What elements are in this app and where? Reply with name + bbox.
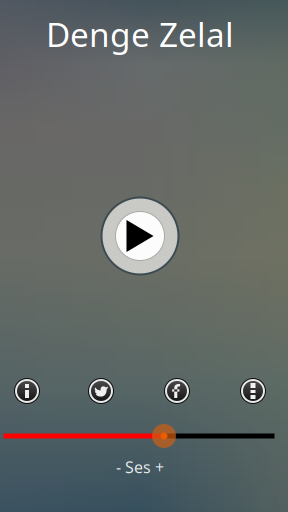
staticText: Denge Zelal	[46, 12, 234, 56]
button[interactable]: More	[236, 374, 270, 408]
button[interactable]: Info	[10, 374, 44, 408]
button[interactable]: Volume	[4, 423, 273, 449]
button[interactable]: Twitter	[84, 374, 118, 408]
button[interactable]: Play	[100, 196, 180, 276]
staticText: - Ses +	[116, 456, 164, 478]
button[interactable]: Facebook	[160, 374, 194, 408]
